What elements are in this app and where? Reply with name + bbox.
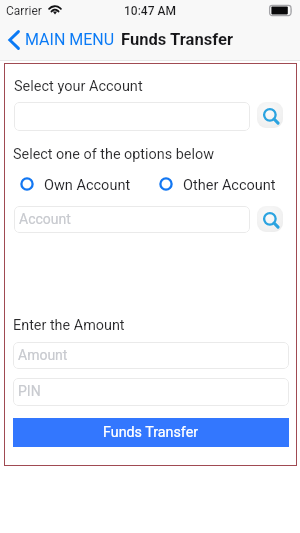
staticText: Select your Account [14, 78, 143, 95]
staticText: PIN [18, 383, 41, 399]
staticText: Funds Transfer [121, 30, 234, 49]
staticText: Account [19, 211, 71, 227]
staticText: 10:47 AM [124, 4, 176, 18]
button[interactable]: Account [14, 206, 250, 233]
staticText: Own Account [44, 177, 131, 194]
button[interactable]: Funds Transfer [13, 418, 289, 447]
button[interactable]: Search [257, 206, 283, 232]
staticText: Amount [18, 347, 68, 363]
button[interactable]: PIN [13, 378, 289, 406]
button[interactable]: Search [257, 102, 283, 128]
staticText: Enter the Amount [13, 317, 125, 334]
button[interactable]: MAIN MENU [4, 24, 121, 55]
staticText: MAIN MENU [25, 30, 115, 49]
staticText: Funds Transfer [103, 424, 199, 441]
button[interactable]: Other Account [157, 173, 278, 194]
button[interactable] [14, 102, 250, 131]
button[interactable]: Own Account [18, 173, 133, 194]
button[interactable]: Amount [13, 342, 289, 369]
staticText: Select one of the options below [13, 146, 214, 163]
staticText: Other Account [183, 177, 276, 194]
staticText: Carrier [6, 4, 42, 18]
